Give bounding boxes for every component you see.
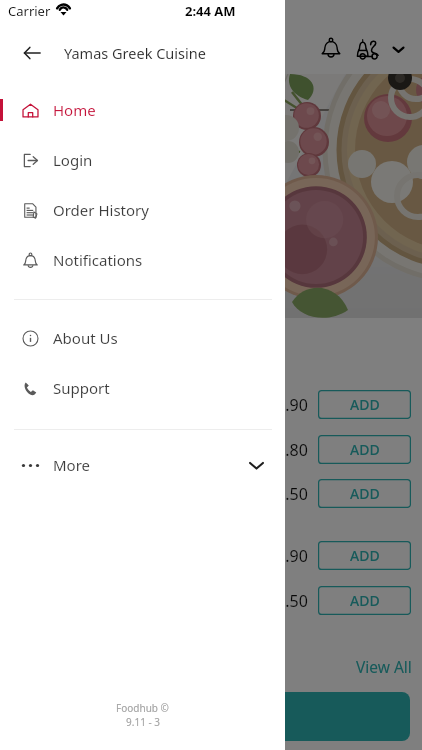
staticText: More	[53, 455, 91, 475]
button[interactable]: ADD	[318, 390, 411, 419]
staticText: Login	[53, 150, 93, 170]
staticText: 19.50	[267, 483, 308, 505]
staticText: Carrier	[8, 2, 51, 20]
staticText: 15.90	[267, 394, 308, 416]
button[interactable]: More	[0, 442, 285, 488]
staticText: 2:44 AM	[185, 2, 236, 20]
button[interactable]: About Us	[0, 315, 285, 361]
button[interactable]: ADD	[318, 586, 411, 615]
button[interactable]: Support	[0, 365, 285, 411]
staticText: Support	[53, 378, 110, 398]
button[interactable]: Home	[0, 87, 285, 133]
button[interactable]	[12, 692, 410, 741]
button[interactable]: Notifications	[0, 237, 285, 283]
button[interactable]: View All	[350, 650, 418, 683]
button[interactable]: ADD	[318, 479, 411, 508]
staticText: 16.90	[267, 545, 308, 567]
staticText: 17.50	[267, 590, 308, 612]
button[interactable]: ADD	[318, 541, 411, 570]
staticText: ADD	[350, 440, 380, 459]
staticText: Home	[53, 100, 96, 120]
staticText: ADD	[350, 546, 380, 565]
button[interactable]: Expand	[384, 35, 412, 63]
staticText: ADD	[350, 484, 380, 503]
button[interactable]: Login	[0, 137, 285, 183]
staticText: ADD	[350, 395, 380, 414]
button[interactable]: Delivery options	[350, 32, 386, 68]
button[interactable]: Back	[11, 32, 53, 74]
button[interactable]: ADD	[318, 435, 411, 464]
staticText: Order History	[53, 200, 149, 220]
button[interactable]: Order History	[0, 187, 285, 233]
staticText: Foodhub ©	[116, 701, 169, 715]
staticText: 9.11 - 3	[126, 715, 160, 729]
staticText: 13.80	[267, 439, 308, 461]
staticText: ADD	[350, 591, 380, 610]
staticText: About Us	[53, 328, 118, 348]
staticText: Notifications	[53, 250, 143, 270]
button[interactable]: Notifications	[313, 30, 349, 66]
staticText: View All	[356, 656, 412, 677]
staticText: Yamas Greek Cuisine	[64, 43, 206, 63]
